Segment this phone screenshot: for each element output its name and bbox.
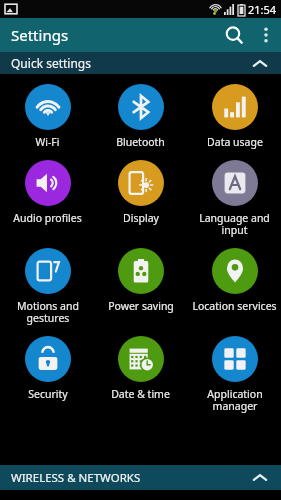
staticText: Display — [123, 211, 159, 225]
staticText: Application manager — [207, 387, 263, 413]
staticText: Language and input — [199, 211, 270, 237]
staticText: Settings — [11, 25, 69, 45]
button[interactable]: More options — [251, 20, 281, 50]
button[interactable]: Data usage — [188, 82, 281, 149]
button[interactable]: WIRELESS & NETWORKS — [0, 465, 281, 490]
staticText: Power saving — [108, 299, 174, 313]
staticText: 21:54 — [248, 2, 277, 17]
button[interactable]: Wi-Fi — [1, 82, 94, 149]
button[interactable]: Motions and gestures — [1, 246, 94, 325]
button[interactable]: Quick settings — [0, 52, 281, 74]
staticText: Data usage — [207, 135, 263, 149]
button[interactable]: Language and input — [188, 158, 281, 237]
button[interactable]: Security — [1, 334, 94, 401]
staticText: Security — [28, 387, 68, 401]
button[interactable]: Location services — [188, 246, 281, 313]
staticText: WIRELESS & NETWORKS — [11, 470, 141, 486]
button[interactable]: Bluetooth — [94, 82, 187, 149]
button[interactable]: Search — [217, 18, 251, 52]
button[interactable]: Application manager — [188, 334, 281, 413]
button[interactable]: Date & time — [94, 334, 187, 401]
button[interactable]: Display — [94, 158, 187, 225]
staticText: Location services — [192, 299, 277, 313]
button[interactable]: Audio profiles — [1, 158, 94, 225]
staticText: Audio profiles — [13, 211, 82, 225]
staticText: Motions and gestures — [17, 299, 79, 325]
staticText: Wi-Fi — [35, 135, 60, 149]
staticText: Date & time — [111, 387, 170, 401]
staticText: Bluetooth — [116, 135, 165, 149]
button[interactable]: Power saving — [94, 246, 187, 313]
staticText: Quick settings — [11, 55, 91, 71]
